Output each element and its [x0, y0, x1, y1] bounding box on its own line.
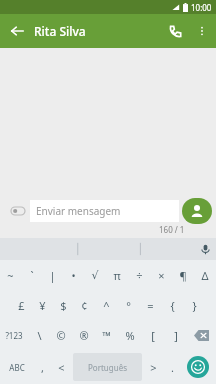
staticText: ^: [103, 298, 110, 313]
button[interactable]: `: [21, 260, 42, 290]
staticText: [: [151, 328, 155, 343]
staticText: %: [125, 328, 135, 343]
staticText: \: [37, 328, 42, 343]
button[interactable]: ]: [164, 320, 187, 350]
button[interactable]: .: [163, 353, 182, 381]
staticText: ÷: [136, 268, 143, 283]
button[interactable]: Send to contact: [182, 198, 212, 224]
staticText: ?123: [5, 330, 23, 341]
button[interactable]: ?123: [0, 320, 28, 350]
staticText: ©: [56, 328, 66, 343]
staticText: ¥: [39, 298, 46, 313]
button[interactable]: More options: [190, 19, 214, 43]
staticText: ~: [7, 268, 14, 283]
button[interactable]: Voice input: [194, 238, 216, 260]
button[interactable]: ÷: [128, 260, 150, 290]
button[interactable]: ~: [0, 260, 21, 290]
button[interactable]: ×: [150, 260, 172, 290]
staticText: ®: [79, 328, 89, 343]
button[interactable]: \: [28, 320, 50, 350]
staticText: ¢: [81, 298, 88, 313]
button[interactable]: }: [183, 290, 205, 320]
staticText: ™: [102, 328, 111, 343]
staticText: •: [71, 268, 76, 283]
button[interactable]: Δ: [194, 260, 216, 290]
button[interactable]: Backspace: [187, 320, 216, 350]
button[interactable]: •: [63, 260, 84, 290]
button[interactable]: π: [106, 260, 128, 290]
staticText: Enviar mensagem: [36, 204, 121, 218]
staticText: .: [171, 360, 174, 375]
button[interactable]: £: [11, 290, 32, 320]
staticText: ¶: [179, 268, 187, 283]
staticText: {: [170, 298, 175, 313]
button[interactable]: ABC: [2, 353, 32, 381]
staticText: 10:00: [191, 2, 212, 13]
staticText: Δ: [201, 268, 209, 283]
button[interactable]: Enviar mensagem: [30, 200, 179, 222]
button[interactable]: Português: [73, 353, 142, 381]
button[interactable]: °: [117, 290, 139, 320]
button[interactable]: Back: [0, 14, 34, 48]
button[interactable]: $: [53, 290, 74, 320]
button[interactable]: =: [139, 290, 161, 320]
staticText: Português: [88, 362, 128, 373]
staticText: ]: [174, 328, 178, 343]
staticText: Rita Silva: [34, 23, 160, 39]
staticText: ,: [41, 360, 44, 375]
button[interactable]: ,: [32, 353, 52, 381]
staticText: }: [192, 298, 197, 313]
button[interactable]: Message type: [6, 199, 30, 223]
staticText: £: [18, 298, 25, 313]
button[interactable]: Emoji: [182, 353, 214, 381]
button[interactable]: ¶: [172, 260, 194, 290]
button[interactable]: <: [52, 353, 71, 381]
button[interactable]: √: [84, 260, 106, 290]
button[interactable]: |: [42, 260, 63, 290]
staticText: ×: [158, 268, 165, 283]
button[interactable]: >: [144, 353, 163, 381]
staticText: |: [49, 268, 56, 283]
button[interactable]: ™: [95, 320, 118, 350]
button[interactable]: ©: [50, 320, 72, 350]
button[interactable]: %: [118, 320, 141, 350]
button[interactable]: [: [141, 320, 164, 350]
staticText: `: [30, 268, 34, 283]
button[interactable]: ®: [72, 320, 95, 350]
button[interactable]: ¥: [32, 290, 53, 320]
staticText: √: [91, 269, 99, 282]
staticText: =: [147, 298, 154, 313]
staticText: <: [58, 360, 65, 375]
staticText: π: [113, 268, 121, 283]
staticText: $: [60, 298, 67, 313]
button[interactable]: ^: [95, 290, 117, 320]
staticText: °: [126, 298, 131, 313]
button[interactable]: Call: [160, 16, 190, 46]
staticText: >: [150, 360, 157, 375]
button[interactable]: ¢: [74, 290, 95, 320]
staticText: 160 / 1: [159, 224, 185, 235]
button[interactable]: {: [161, 290, 183, 320]
staticText: ABC: [9, 362, 25, 373]
